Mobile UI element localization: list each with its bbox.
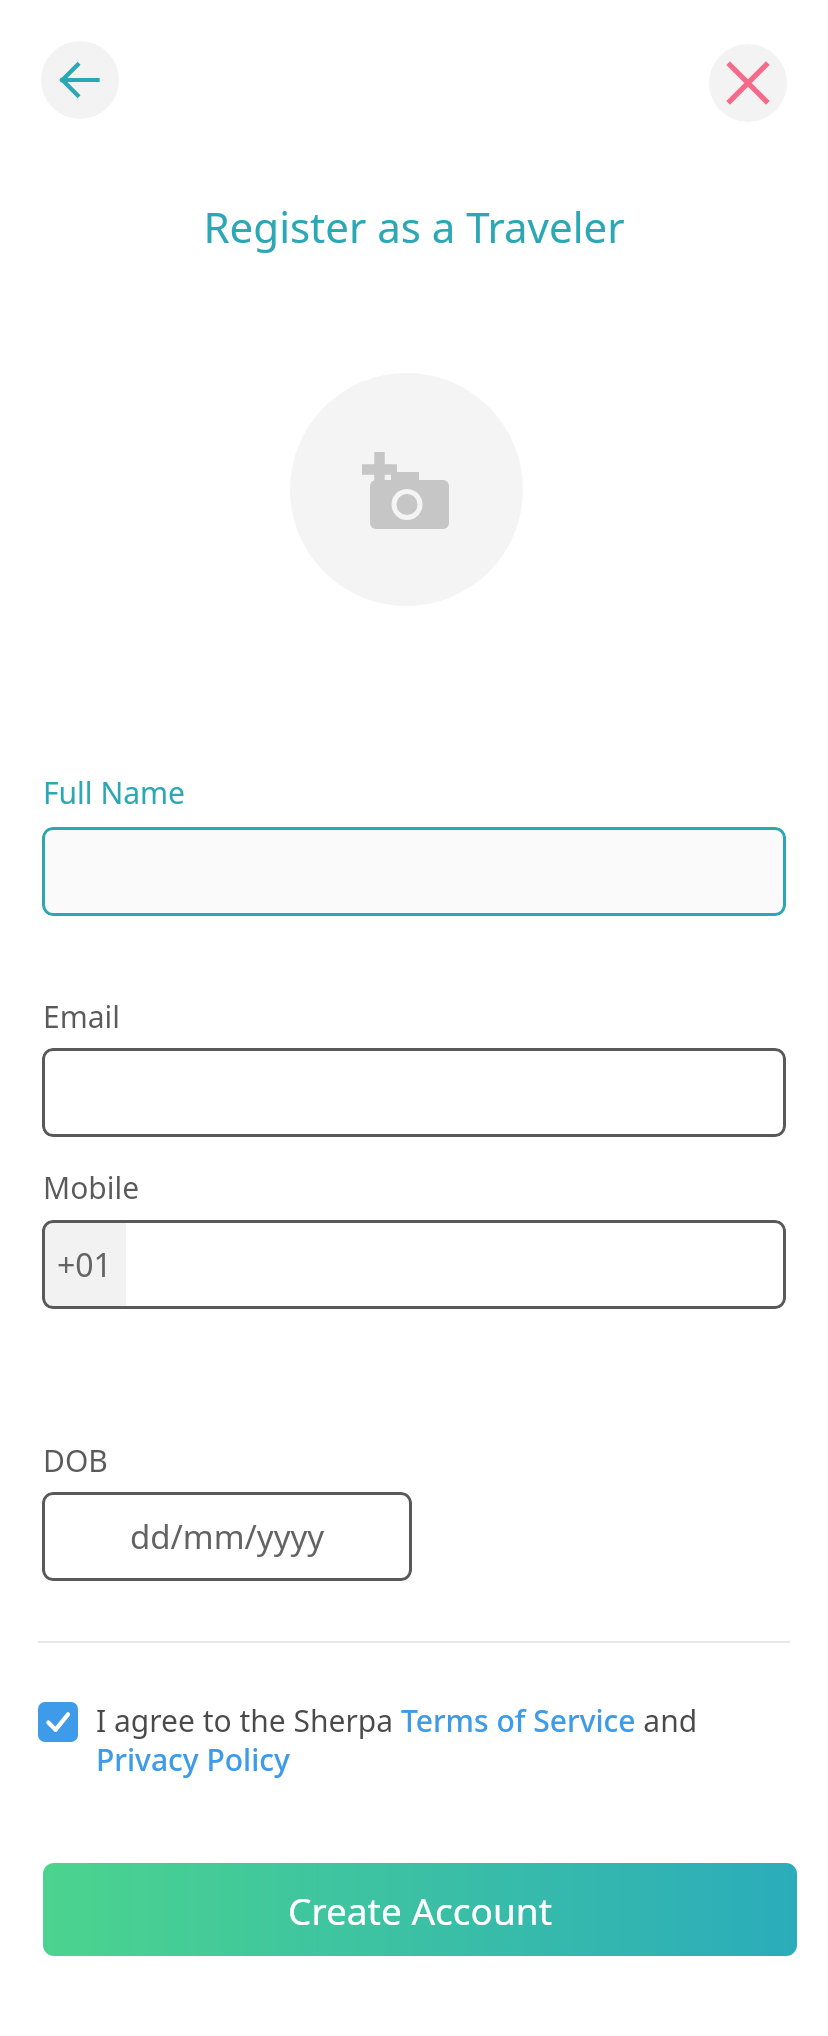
button[interactable]: Add profile photo: [290, 373, 523, 606]
button[interactable]: [42, 827, 786, 916]
button[interactable]: +01: [42, 1220, 786, 1309]
staticText: I agree to the Sherpa Terms of Service a…: [96, 1700, 768, 1779]
button[interactable]: dd/mm/yyyy: [42, 1492, 412, 1581]
staticText: Register as a Traveler: [203, 198, 625, 255]
staticText: Mobile: [43, 1167, 140, 1208]
staticText: DOB: [43, 1440, 108, 1481]
button[interactable]: I agree to the Sherpa Terms of Service a…: [38, 1700, 768, 1779]
staticText: dd/mm/yyyy: [130, 1514, 325, 1559]
staticText: +01: [57, 1243, 112, 1287]
button[interactable]: Back: [41, 41, 119, 119]
staticText: Create Account: [288, 1885, 553, 1935]
staticText: Email: [43, 996, 121, 1037]
button[interactable]: [42, 1048, 786, 1137]
staticText: Full Name: [43, 772, 185, 813]
button[interactable]: Close: [709, 44, 787, 122]
button[interactable]: Create Account: [43, 1863, 797, 1956]
